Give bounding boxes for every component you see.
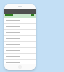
button[interactable] (4, 54, 36, 59)
button[interactable] (4, 18, 36, 23)
button[interactable] (4, 48, 36, 53)
button[interactable] (4, 42, 36, 47)
button[interactable] (4, 30, 36, 35)
button[interactable]: Home (18, 65, 22, 69)
button[interactable] (4, 24, 36, 29)
button[interactable] (4, 60, 36, 64)
button[interactable] (4, 36, 36, 41)
